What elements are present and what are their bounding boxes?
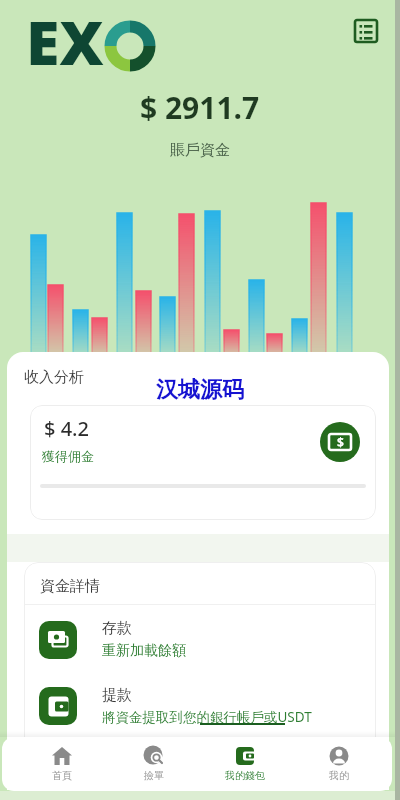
staticText: 汉城源码 — [156, 376, 244, 404]
button[interactable]: 撿單 — [109, 745, 199, 791]
staticText: 首頁 — [52, 769, 72, 782]
button[interactable]: $ 4.2 — [30, 405, 376, 520]
staticText: 撿單 — [144, 769, 164, 782]
button[interactable]: 存款 — [39, 619, 369, 660]
button[interactable]: 我的 — [294, 745, 384, 791]
button[interactable]: 我的錢包 — [200, 745, 290, 791]
staticText: 收入分析 — [24, 368, 84, 387]
staticText: 重新加載餘額 — [102, 642, 186, 660]
staticText: 賬戶資金 — [170, 141, 230, 160]
staticText: EX — [26, 0, 104, 83]
button[interactable] — [350, 16, 382, 48]
button[interactable]: 提款 — [39, 686, 369, 726]
staticText: $ 4.2 — [44, 415, 89, 442]
staticText: $ — [337, 434, 344, 450]
staticText: 獲得佣金 — [42, 448, 94, 464]
staticText: 存款 — [102, 619, 132, 638]
button[interactable]: 首頁 — [17, 745, 107, 791]
staticText: 我的 — [329, 769, 349, 782]
staticText: 資金詳情 — [40, 577, 100, 596]
staticText: 將資金提取到您的銀行帳戶或USDT — [102, 708, 312, 726]
staticText: 我的錢包 — [225, 769, 265, 782]
staticText: 提款 — [102, 686, 132, 705]
staticText: $ 2911.7 — [140, 87, 260, 128]
